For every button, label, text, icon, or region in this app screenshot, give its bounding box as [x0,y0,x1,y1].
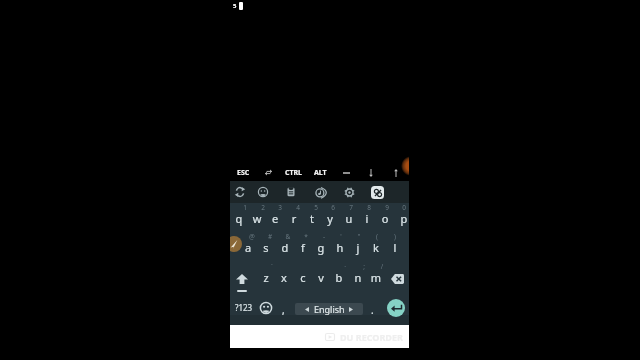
staticText: " [353,232,365,241]
staticText: 5 [233,2,237,10]
staticText: b [330,270,348,285]
staticText: 2 [257,203,269,212]
button[interactable]: v [312,262,330,292]
staticText: k [367,240,385,255]
button[interactable]: Stickers [368,181,386,203]
button[interactable]: ?123 [230,292,258,323]
button[interactable]: English [295,303,363,315]
button[interactable]: ALT [309,161,331,184]
button[interactable]: Shift [230,262,256,292]
staticText: i [358,211,376,226]
button[interactable]: m [367,262,385,292]
staticText: a [239,240,257,255]
button[interactable]: p [395,203,409,232]
button[interactable]: g [312,232,330,262]
staticText: 9 [381,203,393,212]
button[interactable]: w [248,203,266,232]
staticText: · [339,262,351,271]
staticText: m [367,270,385,285]
staticText: DU RECORDER [340,331,403,343]
staticText: @ [246,232,258,241]
button[interactable]: Down arrow [363,161,379,184]
staticText: v [312,270,330,285]
button[interactable]: x [275,262,293,292]
staticText: z [257,270,275,285]
staticText: y [321,211,339,226]
button[interactable]: y [321,203,339,232]
button[interactable]: i [358,203,376,232]
staticText: c [294,270,312,285]
button[interactable]: o [376,203,394,232]
staticText: 6 [327,203,339,212]
button[interactable]: j [349,232,367,262]
staticText: English [314,303,345,315]
button[interactable]: d [276,232,294,262]
staticText: ALT [314,168,327,178]
staticText: l [386,240,404,255]
staticText: g [312,240,330,255]
staticText: r [285,211,303,226]
staticText: 7 [345,203,357,212]
button[interactable]: Clipboard [282,181,300,203]
button[interactable]: e [266,203,284,232]
staticText: ; [358,262,370,271]
button[interactable]: Settings [340,181,358,203]
staticText: / [376,262,388,271]
button[interactable]: s [257,232,275,262]
staticText: , [282,303,285,317]
button[interactable]: f [294,232,312,262]
button[interactable]: z [257,262,275,292]
button[interactable]: c [294,262,312,292]
button[interactable]: ESC [231,161,256,184]
staticText: CTRL [285,168,303,178]
button[interactable]: n [349,262,367,292]
staticText: p [395,211,409,226]
button[interactable]: Backspace [384,264,409,294]
button[interactable]: Emoji [258,292,274,323]
staticText: h [331,240,349,255]
staticText: - [318,232,330,241]
staticText: # [264,232,276,241]
staticText: f [294,240,312,255]
staticText: e [266,211,284,226]
button[interactable]: t [303,203,321,232]
staticText: ?123 [235,302,253,313]
staticText: t [303,211,321,226]
staticText: * [300,232,312,241]
staticText: x [275,270,293,285]
button[interactable]: Up arrow [388,161,404,184]
button[interactable]: b [330,262,348,292]
staticText: d [276,240,294,255]
staticText: u [340,211,358,226]
button[interactable]: Themes [311,181,329,203]
button[interactable]: Left arrow [338,161,354,184]
staticText: s [257,240,275,255]
staticText: q [230,211,248,226]
button[interactable]: Enter [387,299,405,317]
staticText: n [349,270,367,285]
staticText: j [349,240,367,255]
button[interactable]: a [239,232,257,262]
staticText: 4 [292,203,304,212]
button[interactable]: h [331,232,349,262]
staticText: ) [389,232,401,241]
button[interactable]: k [367,232,385,262]
button[interactable]: u [340,203,358,232]
staticText: 1 [239,203,251,212]
staticText: o [376,211,394,226]
button[interactable]: Voice input [231,181,249,203]
button[interactable]: l [386,232,404,262]
button[interactable]: Emoji [254,181,272,203]
staticText: 8 [363,203,375,212]
staticText: & [282,232,294,241]
button[interactable]: Tab [260,161,276,184]
staticText: w [248,211,266,226]
staticText: . [371,303,374,317]
button[interactable]: q [230,203,248,232]
staticText: ( [371,232,383,241]
button[interactable]: CTRL [281,161,307,184]
staticText: ESC [237,168,250,178]
button[interactable]: r [285,203,303,232]
